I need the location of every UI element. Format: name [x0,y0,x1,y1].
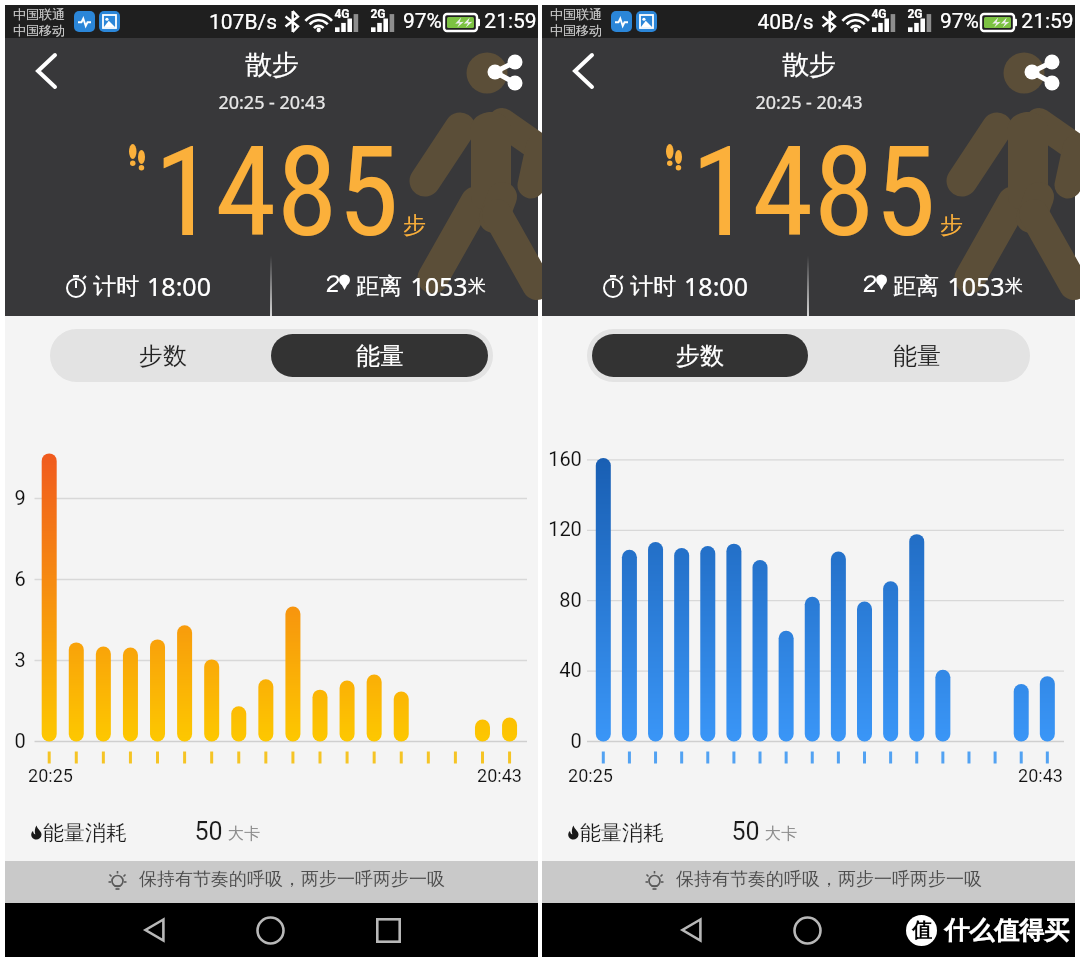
button[interactable]: 步数 [592,334,808,377]
staticText: 步 [403,211,426,240]
staticText: 什么值得买 [944,915,1069,946]
staticText: 18:00 [147,269,211,303]
staticText: 50 [731,817,760,846]
button[interactable]: 能量 [271,334,488,377]
staticText: 40 [559,658,582,681]
staticText: 9 [14,486,26,509]
staticText: 21:59 [1021,9,1074,34]
staticText: 107B/s [209,10,277,35]
staticText: 18:00 [684,269,748,303]
staticText: 散步 [782,48,836,82]
button[interactable]: Back [670,908,714,952]
staticText: 4G [871,7,887,21]
staticText: 步数 [139,341,187,371]
staticText: 中国联通 [550,6,602,22]
button[interactable]: 步数 [55,334,271,377]
staticText: 20:43 [477,765,522,786]
staticText: 20:25 [568,765,613,786]
staticText: 保持有节奏的呼吸，两步一呼两步一吸 [139,868,445,891]
staticText: 中国移动 [550,22,602,38]
staticText: 6 [14,567,26,590]
staticText: 米 [1005,275,1023,298]
staticText: 计时 [630,272,676,301]
staticText: 值 [912,918,932,943]
staticText: 97% [403,9,442,34]
staticText: 1053 [410,269,468,303]
staticText: 80 [559,588,582,611]
button[interactable]: Share [471,38,529,96]
staticText: 21:59 [484,9,537,34]
button[interactable]: Home [248,908,292,952]
staticText: 1053 [947,269,1005,303]
button[interactable]: Share [1008,38,1066,96]
staticText: 40B/s [757,10,814,35]
button[interactable]: Back [19,44,73,98]
staticText: 20:25 [28,765,73,786]
staticText: 保持有节奏的呼吸，两步一呼两步一吸 [676,868,982,891]
button[interactable]: Recent apps [366,908,410,952]
staticText: 步 [940,211,963,240]
staticText: 能量消耗 [43,820,127,846]
staticText: 计时 [93,272,139,301]
staticText: 2G [907,7,923,21]
staticText: 能量 [893,341,941,371]
staticText: 中国联通 [13,6,65,22]
staticText: 50 [194,817,223,846]
staticText: 1485 [154,120,399,265]
staticText: 20:43 [1018,765,1063,786]
staticText: 4G [334,7,350,21]
staticText: 3 [14,648,26,671]
button[interactable]: 能量 [808,334,1025,377]
staticText: 能量 [356,341,404,371]
staticText: 步数 [676,341,724,371]
staticText: 能量消耗 [580,820,664,846]
staticText: 大卡 [765,824,797,844]
staticText: 距离 [356,272,402,301]
staticText: 散步 [245,48,299,82]
staticText: 距离 [893,272,939,301]
staticText: 1485 [691,120,936,265]
staticText: 97% [940,9,979,34]
button[interactable]: Back [556,44,610,98]
staticText: 120 [548,517,582,540]
staticText: 大卡 [228,824,260,844]
staticText: 160 [548,447,582,470]
staticText: 2G [370,7,386,21]
staticText: 0 [570,729,582,752]
button[interactable]: Home [785,908,829,952]
staticText: 米 [468,275,486,298]
button[interactable]: Back [133,908,177,952]
staticText: 中国移动 [13,22,65,38]
staticText: 20:25 - 20:43 [218,90,326,115]
staticText: 20:25 - 20:43 [755,90,863,115]
staticText: 0 [14,729,26,752]
